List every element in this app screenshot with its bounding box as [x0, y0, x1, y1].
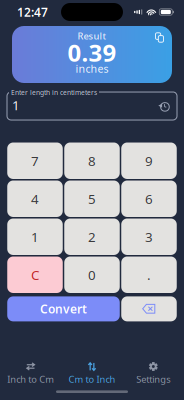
- staticText: Convert: [40, 301, 87, 317]
- button[interactable]: 9: [121, 142, 177, 179]
- staticText: Result: [77, 30, 106, 42]
- staticText: 1: [31, 228, 39, 246]
- staticText: 0.39: [67, 37, 116, 68]
- staticText: 6: [145, 190, 153, 208]
- staticText: 7: [31, 152, 39, 170]
- button[interactable]: Delete: [121, 296, 177, 321]
- button[interactable]: Cm to Inch: [61, 354, 123, 385]
- button[interactable]: 2: [64, 218, 120, 255]
- button[interactable]: 7: [7, 142, 63, 179]
- button[interactable]: .: [121, 256, 177, 293]
- staticText: 2: [88, 228, 96, 246]
- button[interactable]: 8: [64, 142, 120, 179]
- staticText: 12:47: [17, 4, 48, 20]
- button[interactable]: 3: [121, 218, 177, 255]
- staticText: 0: [88, 266, 96, 284]
- button[interactable]: 6: [121, 180, 177, 217]
- staticText: Cm to Inch: [68, 373, 115, 385]
- staticText: 4: [31, 190, 39, 208]
- staticText: 1: [12, 96, 20, 114]
- staticText: 8: [88, 152, 96, 170]
- button[interactable]: Inch to Cm: [0, 354, 61, 385]
- button[interactable]: 0: [64, 256, 120, 293]
- button[interactable]: 5: [64, 180, 120, 217]
- staticText: inches: [75, 61, 108, 76]
- button[interactable]: Convert: [7, 296, 120, 321]
- staticText: Inch to Cm: [7, 373, 54, 385]
- staticText: 9: [145, 152, 153, 170]
- button[interactable]: 4: [7, 180, 63, 217]
- staticText: C: [31, 266, 39, 284]
- staticText: Settings: [136, 373, 170, 385]
- button[interactable]: Recent values: [157, 100, 170, 112]
- button[interactable]: C: [7, 256, 63, 293]
- staticText: 3: [145, 228, 153, 246]
- button[interactable]: Copy result: [154, 32, 165, 43]
- button[interactable]: Settings: [123, 354, 184, 385]
- staticText: 5: [88, 190, 96, 208]
- button[interactable]: 1: [7, 218, 63, 255]
- staticText: Enter length in centimeters: [11, 88, 97, 97]
- staticText: .: [147, 266, 151, 284]
